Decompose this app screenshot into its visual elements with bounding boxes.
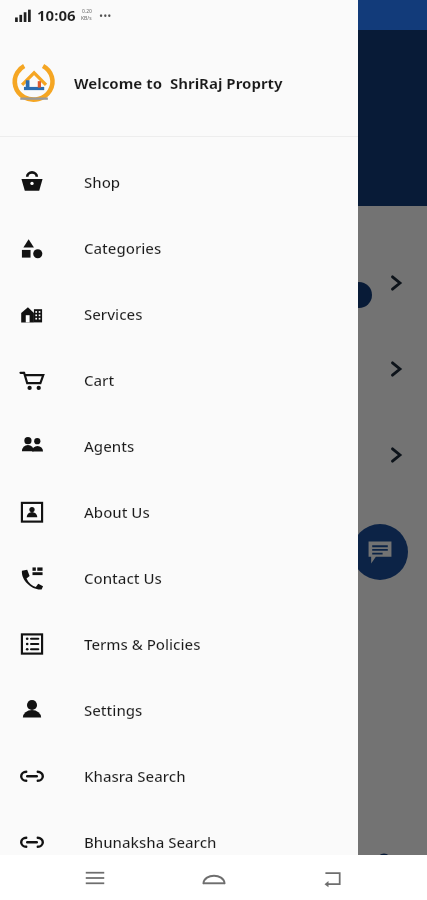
button[interactable]: Terms & Policies	[0, 611, 358, 677]
staticText: Welcome to ShriRaj Proprty	[74, 73, 283, 93]
button[interactable]: Home	[190, 855, 238, 900]
staticText: KB/s	[81, 15, 92, 22]
staticText: 0.20	[82, 8, 92, 15]
staticText: Shop	[84, 172, 121, 192]
button[interactable]: Profile	[349, 842, 419, 900]
button[interactable]: Contact Us	[0, 545, 358, 611]
staticText: Services	[84, 304, 143, 324]
staticText: Cart	[84, 370, 115, 390]
button[interactable]	[0, 246, 427, 319]
staticText: Contact Us	[84, 568, 162, 588]
staticText: Terms & Policies	[84, 634, 201, 654]
button[interactable]	[0, 332, 427, 405]
button[interactable]: Bhunaksha Search	[0, 809, 358, 875]
button[interactable]: Back	[308, 855, 356, 900]
staticText: Categories	[84, 238, 162, 258]
staticText: 10:06	[37, 5, 76, 25]
button[interactable]: Cart	[0, 347, 358, 413]
button[interactable]: Categories	[0, 215, 358, 281]
button[interactable]: About Us	[0, 479, 358, 545]
button[interactable]: Agents	[0, 413, 358, 479]
button[interactable]: Settings	[0, 677, 358, 743]
staticText: Bhunaksha Search	[84, 832, 217, 852]
button[interactable]: Recents	[71, 855, 119, 900]
button[interactable]	[0, 418, 427, 491]
staticText: Agents	[84, 436, 135, 456]
staticText: Settings	[84, 700, 143, 720]
button[interactable]: Chat	[352, 524, 408, 580]
staticText: •••	[99, 8, 112, 23]
staticText: Khasra Search	[84, 766, 186, 786]
button[interactable]: Khasra Search	[0, 743, 358, 809]
button[interactable]: Shop	[0, 149, 358, 215]
button[interactable]	[0, 504, 427, 577]
button[interactable]: Services	[0, 281, 358, 347]
staticText: About Us	[84, 502, 150, 522]
